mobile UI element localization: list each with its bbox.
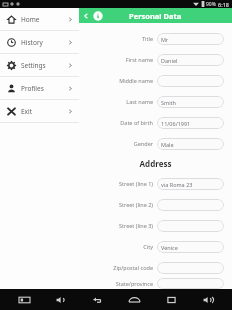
button[interactable]: [157, 199, 224, 211]
button[interactable]: [157, 75, 224, 87]
staticText: Venice: [161, 244, 178, 251]
button[interactable]: History: [0, 31, 79, 53]
staticText: Zip/postal code: [79, 264, 153, 271]
staticText: Street (line 1): [79, 180, 153, 187]
button[interactable]: Home: [121, 289, 147, 310]
staticText: Middle name: [79, 77, 153, 84]
button[interactable]: Back: [85, 289, 111, 310]
staticText: Title: [79, 35, 153, 42]
staticText: State/province: [79, 280, 153, 287]
button[interactable]: Back: [82, 12, 90, 20]
staticText: Male: [161, 141, 174, 148]
staticText: Last name: [79, 98, 153, 105]
staticText: Exit: [21, 107, 33, 116]
staticText: Personal Data: [129, 11, 182, 21]
staticText: Profiles: [21, 84, 44, 93]
button[interactable]: Daniel: [157, 54, 224, 66]
staticText: Home: [21, 15, 40, 24]
staticText: 11/06/1991: [161, 120, 191, 127]
button[interactable]: via Roma 23: [157, 178, 224, 190]
button[interactable]: Exit: [0, 100, 79, 122]
button[interactable]: Volume down: [48, 289, 74, 310]
button[interactable]: Venice: [157, 241, 224, 253]
staticText: Address: [79, 158, 232, 169]
staticText: Street (line 2): [79, 201, 153, 208]
staticText: Daniel: [161, 57, 178, 64]
staticText: Date of birth: [79, 119, 153, 126]
staticText: History: [21, 38, 43, 47]
button[interactable]: Mr: [157, 33, 224, 45]
button[interactable]: [157, 262, 224, 274]
staticText: Smith: [161, 99, 176, 106]
button[interactable]: Info: [92, 10, 103, 21]
button[interactable]: Settings: [0, 54, 79, 76]
button[interactable]: Profiles: [0, 77, 79, 99]
button[interactable]: Recents: [158, 289, 184, 310]
staticText: Gender: [79, 140, 153, 147]
staticText: Settings: [21, 61, 46, 70]
staticText: 90%: [206, 1, 216, 8]
staticText: City: [79, 243, 153, 250]
staticText: 6:18: [218, 1, 229, 8]
button[interactable]: Home: [0, 8, 79, 30]
button[interactable]: Keyboard: [11, 289, 37, 310]
staticText: Street (line 3): [79, 222, 153, 229]
button[interactable]: [157, 220, 224, 232]
button[interactable]: Smith: [157, 96, 224, 108]
button[interactable]: [157, 278, 224, 289]
staticText: First name: [79, 56, 153, 63]
button[interactable]: Male: [157, 138, 224, 150]
staticText: Mr: [161, 36, 169, 43]
button[interactable]: Volume up: [195, 289, 221, 310]
button[interactable]: 11/06/1991: [157, 117, 224, 129]
staticText: via Roma 23: [161, 181, 193, 188]
